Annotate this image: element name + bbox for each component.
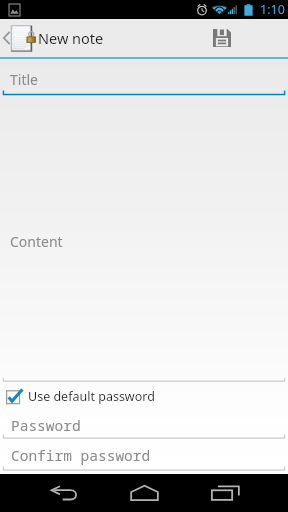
button[interactable]: Confirm password <box>0 440 288 472</box>
staticText: 1:10 <box>260 1 285 18</box>
button[interactable]: Title <box>0 59 288 96</box>
button[interactable]: Back <box>24 474 104 512</box>
staticText: Title <box>10 70 38 89</box>
button[interactable]: Password <box>0 410 288 440</box>
staticText: New note <box>38 28 104 48</box>
staticText: Password <box>11 415 81 435</box>
staticText: Use default password <box>28 388 155 405</box>
button[interactable]: Content <box>0 96 288 383</box>
button[interactable]: Recent apps <box>185 474 265 512</box>
button[interactable]: New note <box>0 19 104 57</box>
button[interactable]: Home <box>104 474 184 512</box>
staticText: Confirm password <box>11 445 151 465</box>
button[interactable]: Save <box>203 19 241 57</box>
button[interactable]: Use default password <box>0 383 288 410</box>
staticText: Content <box>10 232 63 251</box>
